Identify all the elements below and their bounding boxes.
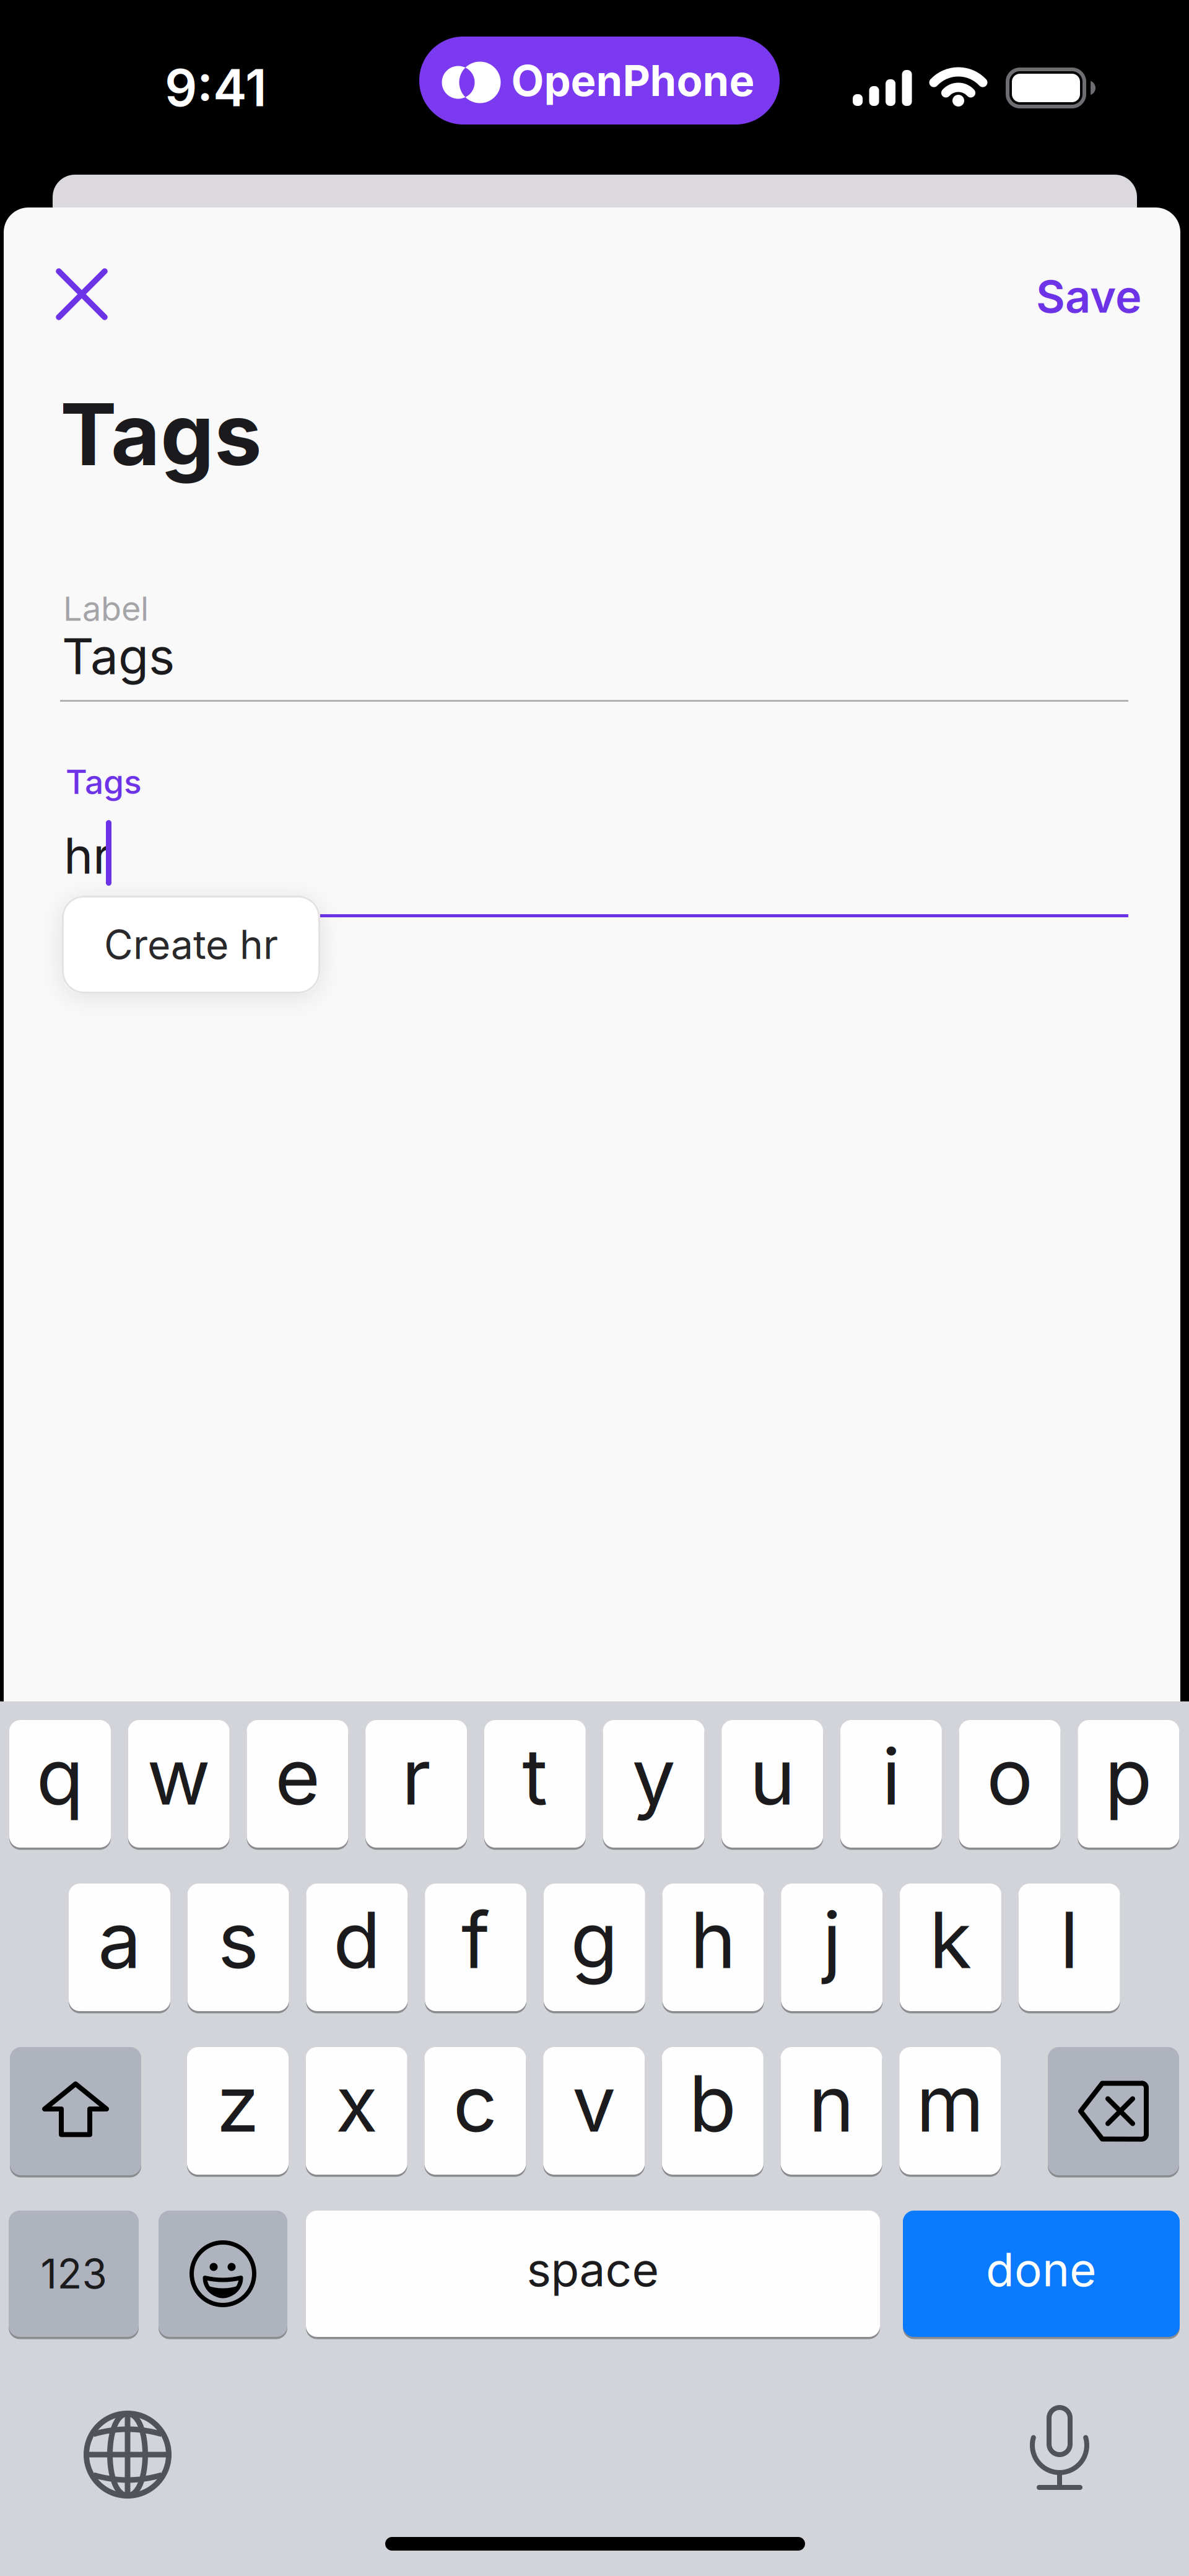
staticText: n xyxy=(808,2056,854,2150)
staticText: y xyxy=(632,1729,675,1823)
button[interactable]: m xyxy=(899,2047,1001,2175)
staticText: v xyxy=(572,2056,616,2150)
staticText: f xyxy=(461,1893,490,1987)
staticText: b xyxy=(689,2056,736,2150)
staticText: g xyxy=(571,1893,618,1987)
button[interactable]: l xyxy=(1018,1884,1120,2011)
button[interactable]: q xyxy=(9,1720,111,1848)
staticText: t xyxy=(522,1729,548,1823)
staticText: d xyxy=(333,1893,381,1987)
staticText: o xyxy=(987,1729,1033,1823)
staticText: 123 xyxy=(41,2249,107,2298)
button[interactable]: g xyxy=(544,1884,645,2011)
staticText: h xyxy=(690,1893,736,1987)
button[interactable]: Create hr xyxy=(62,896,320,993)
staticText: q xyxy=(36,1729,84,1823)
staticText: i xyxy=(882,1729,900,1823)
button[interactable]: y xyxy=(603,1720,704,1848)
button[interactable]: done xyxy=(903,2211,1180,2337)
staticText: Tags xyxy=(60,383,262,486)
button[interactable]: Dictation xyxy=(1026,2405,1094,2498)
button[interactable]: j xyxy=(781,1884,883,2011)
staticText: m xyxy=(916,2056,984,2150)
staticText: z xyxy=(216,2056,259,2150)
button[interactable]: Emoji xyxy=(159,2211,287,2337)
button[interactable]: d xyxy=(306,1884,408,2011)
staticText: w xyxy=(147,1729,211,1823)
button[interactable]: o xyxy=(959,1720,1061,1848)
staticText: c xyxy=(453,2056,498,2150)
button[interactable]: n xyxy=(781,2047,882,2175)
staticText: Create hr xyxy=(104,921,278,969)
staticText: p xyxy=(1105,1729,1152,1823)
staticText: Tags xyxy=(62,626,175,686)
button[interactable]: OpenPhone screen sharing xyxy=(419,37,780,124)
button[interactable]: space xyxy=(306,2211,880,2337)
button[interactable]: r xyxy=(365,1720,467,1848)
button[interactable]: z xyxy=(187,2047,289,2175)
button[interactable]: c xyxy=(424,2047,526,2175)
staticText: x xyxy=(335,2056,378,2150)
staticText: u xyxy=(749,1729,795,1823)
staticText: Save xyxy=(1036,269,1142,323)
button[interactable]: u xyxy=(722,1720,823,1848)
staticText: Tags xyxy=(66,762,142,802)
button[interactable]: t xyxy=(484,1720,586,1848)
button[interactable]: a xyxy=(69,1884,170,2011)
staticText: l xyxy=(1060,1893,1079,1987)
button[interactable]: b xyxy=(662,2047,763,2175)
staticText: hr xyxy=(64,826,111,886)
staticText: 9:41 xyxy=(165,57,267,118)
button[interactable]: x xyxy=(306,2047,407,2175)
staticText: OpenPhone xyxy=(511,55,755,106)
button[interactable]: Label text field xyxy=(60,588,1128,702)
button[interactable]: f xyxy=(425,1884,526,2011)
staticText: space xyxy=(527,2241,659,2297)
staticText: Label xyxy=(63,588,149,629)
button[interactable]: s xyxy=(187,1884,289,2011)
button[interactable]: Save xyxy=(1036,269,1142,323)
staticText: done xyxy=(986,2241,1097,2297)
button[interactable]: i xyxy=(840,1720,942,1848)
button[interactable]: w xyxy=(128,1720,230,1848)
staticText: a xyxy=(98,1893,141,1987)
button[interactable]: h xyxy=(662,1884,764,2011)
staticText: e xyxy=(275,1729,320,1823)
button[interactable]: e xyxy=(247,1720,348,1848)
button[interactable]: Tags text field xyxy=(60,762,1128,917)
button[interactable]: Delete xyxy=(1048,2047,1179,2175)
button[interactable]: Next keyboard xyxy=(81,2408,174,2501)
button[interactable]: p xyxy=(1078,1720,1179,1848)
button[interactable]: Shift xyxy=(10,2047,141,2175)
staticText: j xyxy=(823,1893,841,1987)
staticText: r xyxy=(402,1729,431,1823)
button[interactable]: Close xyxy=(41,254,122,334)
button[interactable]: 123 xyxy=(9,2211,139,2337)
button[interactable]: k xyxy=(900,1884,1001,2011)
button[interactable]: v xyxy=(543,2047,645,2175)
staticText: s xyxy=(218,1893,259,1987)
staticText: k xyxy=(929,1893,972,1987)
